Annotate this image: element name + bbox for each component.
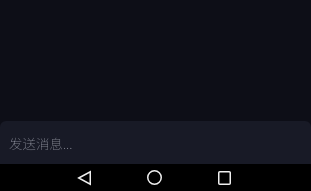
- staticText: 发送消息...: [9, 133, 73, 153]
- button[interactable]: Recent apps: [189, 164, 259, 191]
- button[interactable]: Home: [119, 164, 189, 191]
- button[interactable]: 发送消息...: [0, 121, 311, 164]
- button[interactable]: Back: [49, 164, 119, 191]
